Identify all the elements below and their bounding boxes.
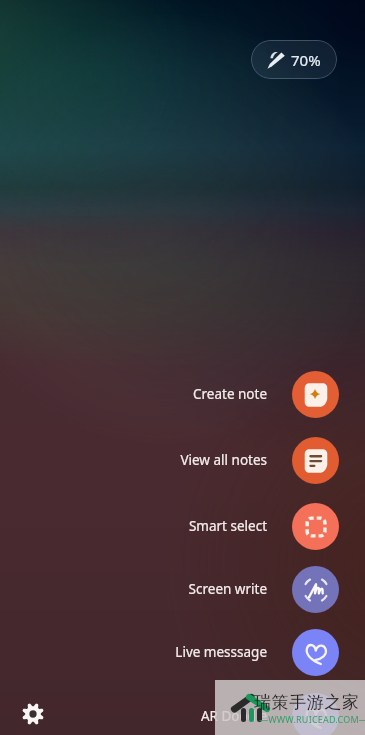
staticText: 瑞策手游之家 xyxy=(254,692,360,713)
button[interactable]: View all notes xyxy=(110,436,339,484)
staticText: —WWW.RUICEAD.COM— xyxy=(259,713,365,725)
staticText: AR Doodle xyxy=(200,707,267,725)
staticText: 70% xyxy=(291,50,321,70)
staticText: Live messsage xyxy=(175,643,267,661)
button[interactable]: Create note xyxy=(110,370,339,418)
button[interactable]: AR Doodle xyxy=(110,692,339,735)
staticText: Smart select xyxy=(188,517,267,535)
button[interactable]: Smart select xyxy=(110,502,339,550)
staticText: View all notes xyxy=(180,451,267,469)
staticText: Create note xyxy=(192,385,267,403)
button[interactable]: Screen write xyxy=(110,565,339,613)
staticText: Screen write xyxy=(188,580,267,598)
button[interactable]: Live messsage xyxy=(110,628,339,676)
button[interactable]: S Pen battery 70 percent xyxy=(251,40,337,79)
button[interactable]: Settings xyxy=(10,691,55,735)
